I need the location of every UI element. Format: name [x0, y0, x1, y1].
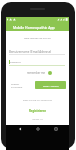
button[interactable]: Back [17, 126, 23, 132]
button[interactable]: FORGOT PASSWORD [11, 83, 25, 89]
staticText: Benutzername (Email Adresse) [9, 50, 52, 54]
staticText: FORGOT PASSWORD [11, 83, 25, 89]
button[interactable]: SAVE / LOGIN [35, 81, 66, 89]
button[interactable]: Home [35, 126, 41, 132]
button[interactable]: Registrieren [6, 109, 69, 113]
staticText: Version 1.0 [6, 118, 69, 121]
staticText: DON'T HAVE AN ACCOUNT? [6, 99, 69, 102]
staticText: SAVE / LOGIN [43, 84, 59, 87]
button[interactable]: remember me [24, 70, 61, 76]
staticText: Passwort [10, 60, 21, 63]
staticText: Mobile Homeopathic App [13, 25, 55, 30]
staticText: Bitte melden Sie sich an [6, 36, 69, 39]
staticText: remember me [27, 71, 46, 75]
button[interactable]: Recent apps [53, 126, 59, 132]
